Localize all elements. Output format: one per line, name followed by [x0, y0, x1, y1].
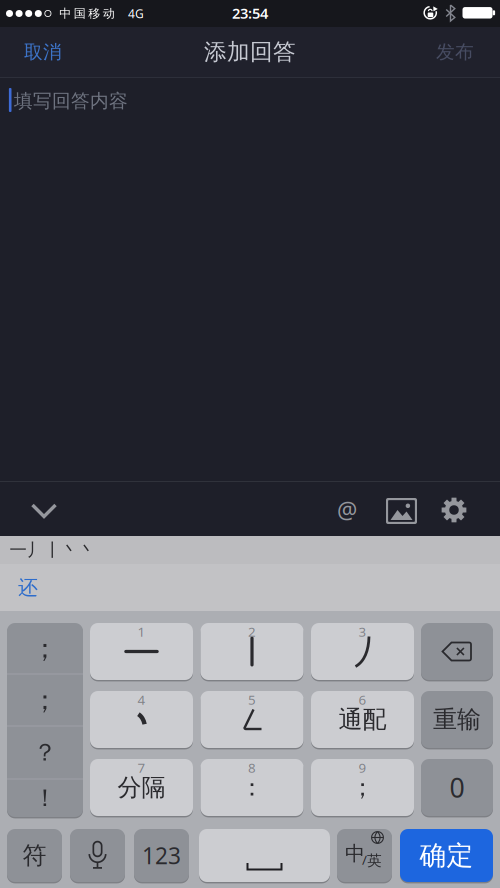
button[interactable]: Mention: [327, 490, 367, 530]
staticText: 中: [345, 841, 365, 866]
button[interactable]: [311, 623, 414, 680]
button[interactable]: 123: [134, 829, 189, 882]
button[interactable]: 符: [7, 829, 62, 882]
button[interactable]: Dismiss keyboard: [22, 491, 66, 531]
button[interactable]: 分隔: [90, 759, 193, 816]
button[interactable]: Space: [199, 829, 330, 882]
staticText: 国: [74, 6, 86, 21]
staticText: 9: [358, 759, 366, 776]
button[interactable]: ；: [311, 759, 414, 816]
staticText: 23:54: [232, 3, 268, 23]
staticText: @: [337, 495, 357, 525]
staticText: ！: [33, 783, 57, 813]
staticText: 2: [248, 623, 256, 640]
button[interactable]: 发布: [420, 27, 490, 77]
staticText: 5: [248, 691, 256, 708]
button[interactable]: 确定: [400, 829, 493, 882]
staticText: 重输: [433, 705, 481, 734]
button[interactable]: ：: [200, 759, 303, 816]
button[interactable]: [90, 691, 193, 748]
staticText: ；: [350, 773, 374, 802]
button[interactable]: 重输: [421, 691, 493, 748]
staticText: 123: [142, 840, 181, 870]
staticText: ；: [31, 632, 58, 665]
staticText: ：: [240, 773, 264, 802]
button[interactable]: 还: [6, 564, 50, 611]
staticText: 填写回答内容: [14, 89, 128, 112]
button[interactable]: [200, 623, 303, 680]
button[interactable]: 0: [421, 759, 493, 816]
staticText: 1: [137, 623, 145, 640]
button[interactable]: 取消: [8, 27, 78, 77]
staticText: 7: [137, 759, 145, 776]
staticText: 8: [248, 759, 256, 776]
staticText: 移: [88, 6, 100, 21]
button[interactable]: Punctuation keys: [7, 623, 83, 817]
staticText: /: [362, 851, 367, 868]
staticText: 通配: [338, 705, 386, 734]
button[interactable]: [90, 623, 193, 680]
staticText: 中: [59, 6, 71, 21]
button[interactable]: [200, 691, 303, 748]
staticText: 英: [367, 851, 382, 869]
staticText: 0: [449, 770, 464, 805]
staticText: 4: [137, 691, 145, 708]
staticText: 添加回答: [204, 38, 296, 66]
staticText: 符: [22, 841, 46, 870]
staticText: 4G: [128, 5, 144, 21]
button[interactable]: Switch language: [337, 829, 392, 882]
staticText: 一丿丨丶丶: [9, 539, 96, 561]
button[interactable]: Insert image: [379, 491, 423, 531]
staticText: 取消: [24, 40, 62, 63]
staticText: 还: [18, 575, 38, 600]
staticText: 6: [358, 691, 366, 708]
button[interactable]: 通配: [311, 691, 414, 748]
button[interactable]: Delete: [421, 623, 493, 680]
button[interactable]: Settings: [432, 490, 476, 530]
staticText: ；: [31, 684, 58, 716]
staticText: 动: [103, 6, 115, 21]
staticText: 确定: [419, 839, 473, 872]
staticText: 分隔: [117, 773, 165, 802]
staticText: ？: [33, 738, 57, 767]
button[interactable]: Dictation: [70, 829, 125, 882]
staticText: 3: [358, 623, 366, 640]
staticText: 发布: [436, 40, 474, 63]
